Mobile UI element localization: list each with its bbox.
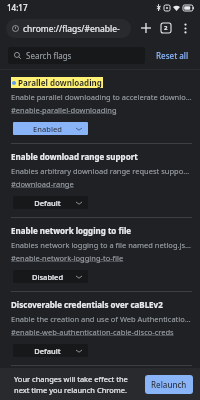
staticText: Relaunch xyxy=(151,379,187,390)
button[interactable]: #enable-web-authentication-cable-disco-c… xyxy=(11,327,174,337)
staticText: Enable network logging to file xyxy=(11,225,132,236)
button[interactable]: #enable-network-logging-to-file xyxy=(11,253,124,263)
button[interactable]: Default xyxy=(13,196,88,209)
staticText: Search flags xyxy=(26,50,72,61)
button[interactable]: Reset all xyxy=(152,47,192,64)
button[interactable]: Default xyxy=(13,344,88,357)
button[interactable]: More options xyxy=(176,19,194,37)
staticText: Parallel downloading xyxy=(18,77,102,88)
button[interactable]: New tab xyxy=(136,18,156,38)
button[interactable]: #download-range xyxy=(11,179,74,189)
button[interactable]: Tab switcher, 2 tabs xyxy=(156,18,176,38)
button[interactable]: Search flags xyxy=(8,47,145,64)
staticText: Enable parallel downloading to accelerat… xyxy=(11,92,192,102)
staticText: Default xyxy=(19,346,76,356)
staticText: Discoverable credentials over caBLEv2 xyxy=(11,299,163,310)
button[interactable]: #enable-parallel-downloading xyxy=(11,105,117,115)
staticText: Enabled xyxy=(19,124,76,134)
staticText: Enables arbitrary download range request… xyxy=(11,166,192,176)
button[interactable]: Enabled xyxy=(13,122,88,135)
button[interactable]: Relaunch xyxy=(145,375,193,394)
staticText: Your changes will take effect the next t… xyxy=(14,374,141,395)
staticText: chrome://flags/#enable-par xyxy=(23,23,125,35)
staticText: Default xyxy=(19,198,76,208)
button[interactable]: Disabled xyxy=(13,270,88,283)
staticText: 14:17 xyxy=(7,2,28,13)
staticText: Disabled xyxy=(19,272,76,282)
staticText: Enables network logging to a file named … xyxy=(11,240,192,250)
staticText: Enable download range support xyxy=(11,151,138,162)
staticText: Reset all xyxy=(156,50,189,61)
staticText: Enable the creation and use of Web Authe… xyxy=(11,314,192,324)
staticText: 2 xyxy=(164,24,168,32)
button[interactable]: chrome://flags/#enable-par xyxy=(6,19,131,38)
